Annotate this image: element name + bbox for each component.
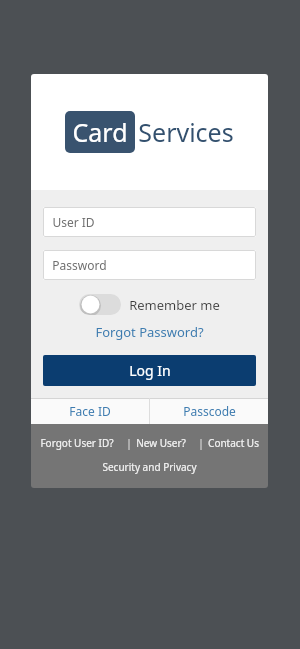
staticText: Card bbox=[72, 115, 128, 149]
staticText: User ID bbox=[52, 214, 95, 230]
staticText: Services bbox=[138, 115, 234, 149]
button[interactable]: Face ID bbox=[31, 398, 149, 424]
staticText: Password bbox=[52, 257, 107, 273]
staticText: Contact Us bbox=[208, 436, 259, 450]
staticText: Passcode bbox=[183, 403, 236, 419]
staticText: | bbox=[114, 436, 136, 450]
button[interactable]: User ID bbox=[43, 207, 256, 237]
button[interactable]: Password bbox=[43, 250, 256, 280]
button[interactable]: Security and Privacy bbox=[102, 460, 197, 474]
staticText: Log In bbox=[129, 361, 171, 380]
button[interactable]: Passcode bbox=[150, 398, 268, 424]
button[interactable]: New User? bbox=[136, 436, 186, 450]
staticText: Forgot User ID? bbox=[40, 436, 114, 450]
button[interactable]: Forgot User ID? bbox=[40, 436, 114, 450]
staticText: Face ID bbox=[69, 403, 111, 419]
staticText: Remember me bbox=[129, 296, 220, 314]
staticText: New User? bbox=[136, 436, 186, 450]
button[interactable]: Contact Us bbox=[208, 436, 259, 450]
staticText: Forgot Password? bbox=[95, 323, 204, 341]
staticText: Security and Privacy bbox=[102, 460, 197, 474]
staticText: | bbox=[186, 436, 208, 450]
button[interactable]: Log In bbox=[43, 355, 256, 386]
button[interactable]: Forgot Password? bbox=[43, 323, 256, 341]
button[interactable]: Remember me toggle bbox=[79, 294, 121, 315]
